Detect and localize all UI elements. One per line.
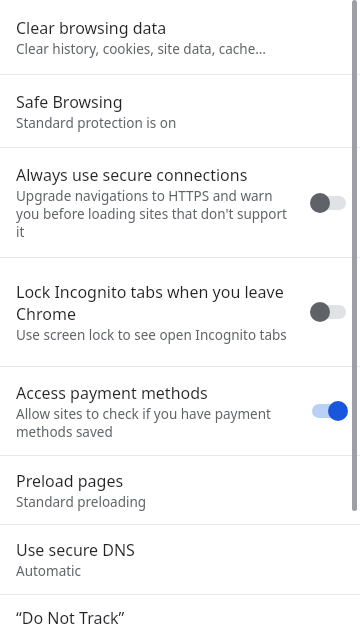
button[interactable]: Switch on bbox=[306, 396, 352, 426]
button[interactable]: Always use secure connections bbox=[0, 148, 360, 257]
staticText: Preload pages bbox=[16, 470, 124, 492]
button[interactable]: Safe Browsing bbox=[0, 75, 360, 147]
staticText: Safe Browsing bbox=[16, 91, 123, 113]
button[interactable]: Clear browsing data bbox=[0, 0, 360, 74]
button[interactable]: Access payment methods bbox=[0, 367, 360, 455]
staticText: Use screen lock to see open Incognito ta… bbox=[16, 326, 287, 344]
staticText: Standard protection is on bbox=[16, 114, 177, 132]
staticText: Allow sites to check if you have payment… bbox=[16, 405, 296, 441]
staticText: Upgrade navigations to HTTPS and warn yo… bbox=[16, 187, 296, 241]
button[interactable]: Use secure DNS bbox=[0, 525, 360, 594]
staticText: Lock Incognito tabs when you leave Chrom… bbox=[16, 281, 296, 325]
staticText: “Do Not Track” bbox=[16, 607, 125, 629]
staticText: Use secure DNS bbox=[16, 539, 135, 561]
staticText: Access payment methods bbox=[16, 382, 208, 404]
staticText: Automatic bbox=[16, 562, 82, 580]
button[interactable]: Switch off bbox=[306, 188, 352, 218]
button[interactable]: “Do Not Track” bbox=[0, 595, 360, 640]
staticText: Clear history, cookies, site data, cache… bbox=[16, 40, 266, 58]
staticText: Standard preloading bbox=[16, 493, 147, 511]
button[interactable]: Switch off bbox=[306, 297, 352, 327]
button[interactable]: Lock Incognito tabs when you leave Chrom… bbox=[0, 258, 360, 366]
staticText: Always use secure connections bbox=[16, 164, 248, 186]
staticText: Clear browsing data bbox=[16, 17, 167, 39]
button[interactable]: Preload pages bbox=[0, 456, 360, 524]
